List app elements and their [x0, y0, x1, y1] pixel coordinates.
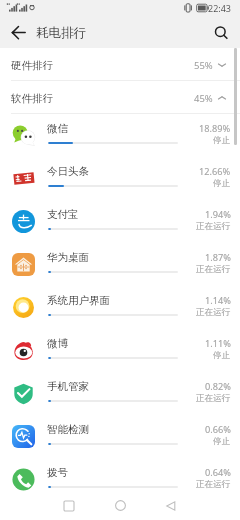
button[interactable]: 支付宝 [0, 200, 240, 243]
staticText: 45% [194, 92, 213, 105]
button[interactable]: 硬件排行 [0, 48, 240, 80]
staticText: 0.64% [205, 466, 231, 479]
staticText: 1.11% [205, 337, 231, 350]
staticText: 微博 [47, 337, 68, 350]
staticText: 1.14% [205, 294, 231, 307]
button[interactable]: 智能检测 [0, 415, 240, 458]
staticText: 华为桌面 [47, 251, 89, 264]
staticText: 1.94% [205, 208, 231, 221]
staticText: 0.82% [205, 380, 231, 393]
staticText: 停止 [213, 350, 231, 361]
staticText: 硬件排行 [11, 59, 53, 72]
staticText: 拨号 [47, 466, 68, 479]
staticText: 停止 [213, 436, 231, 447]
staticText: 22:43 [208, 2, 232, 14]
staticText: 软件排行 [11, 92, 53, 105]
staticText: 系统用户界面 [47, 294, 110, 307]
staticText: 正在运行 [196, 393, 231, 404]
staticText: 18.89% [199, 122, 231, 135]
staticText: 正在运行 [196, 264, 231, 275]
button[interactable]: 华为桌面 [0, 243, 240, 286]
button[interactable]: Recent apps [54, 491, 83, 520]
button[interactable]: 拨号 [0, 458, 240, 491]
button[interactable]: Home [106, 491, 135, 520]
staticText: 12.66% [199, 165, 231, 178]
button[interactable]: 今日头条 [0, 157, 240, 200]
staticText: 今日头条 [47, 165, 89, 178]
staticText: 停止 [213, 178, 231, 189]
staticText: 智能检测 [47, 423, 89, 436]
staticText: 正在运行 [196, 221, 231, 232]
staticText: 正在运行 [196, 307, 231, 318]
staticText: 1.87% [205, 251, 231, 264]
button[interactable]: 微博 [0, 329, 240, 372]
staticText: 手机管家 [47, 380, 89, 393]
button[interactable]: 微信 [0, 114, 240, 157]
button[interactable]: 系统用户界面 [0, 286, 240, 329]
button[interactable]: 手机管家 [0, 372, 240, 415]
button[interactable]: 软件排行 [0, 81, 240, 113]
staticText: 55% [194, 59, 213, 72]
staticText: 支付宝 [47, 208, 79, 221]
staticText: 微信 [47, 122, 68, 135]
button[interactable]: Search [206, 16, 240, 48]
staticText: 0.66% [205, 423, 231, 436]
button[interactable]: Back [0, 16, 34, 48]
staticText: 停止 [213, 135, 231, 146]
button[interactable]: Back [156, 491, 185, 520]
staticText: 耗电排行 [36, 25, 87, 41]
staticText: 正在运行 [196, 479, 231, 490]
